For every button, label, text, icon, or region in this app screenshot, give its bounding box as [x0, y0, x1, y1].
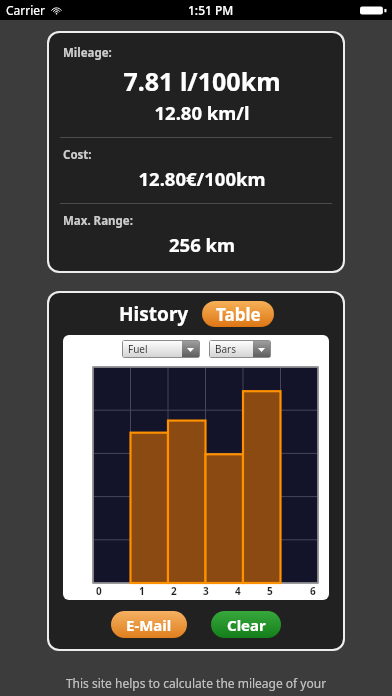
button[interactable]: Fuel selector [123, 341, 199, 357]
staticText: 1:51 PM [188, 2, 234, 18]
staticText: Mileage: [63, 45, 112, 61]
staticText: 1 [139, 584, 145, 598]
staticText: Table [216, 303, 261, 326]
staticText: Max. Range: [63, 213, 133, 229]
button[interactable]: Bars selector [210, 341, 270, 357]
staticText: History [119, 301, 189, 327]
staticText: 256 km [65, 232, 339, 257]
button[interactable]: E-Mail [111, 611, 187, 638]
staticText: 7.81 l/100km [65, 64, 339, 98]
staticText: 4 [235, 584, 241, 598]
staticText: 2 [171, 584, 177, 598]
staticText: Bars [215, 342, 237, 356]
button[interactable]: Table [202, 301, 274, 327]
staticText: This site helps to calculate the mileage… [0, 675, 392, 691]
staticText: Carrier [6, 2, 46, 18]
staticText: Clear [227, 615, 266, 635]
staticText: 3 [203, 584, 209, 598]
staticText: 12.80 km/l [65, 100, 339, 125]
staticText: E-Mail [126, 615, 172, 635]
staticText: Fuel [128, 342, 148, 356]
staticText: 12.80€/100km [65, 166, 339, 191]
staticText: 5 [267, 584, 273, 598]
button[interactable]: Clear [211, 611, 281, 638]
staticText: Cost: [63, 147, 92, 163]
staticText: 6 [310, 584, 316, 598]
staticText: 0 [96, 584, 102, 598]
